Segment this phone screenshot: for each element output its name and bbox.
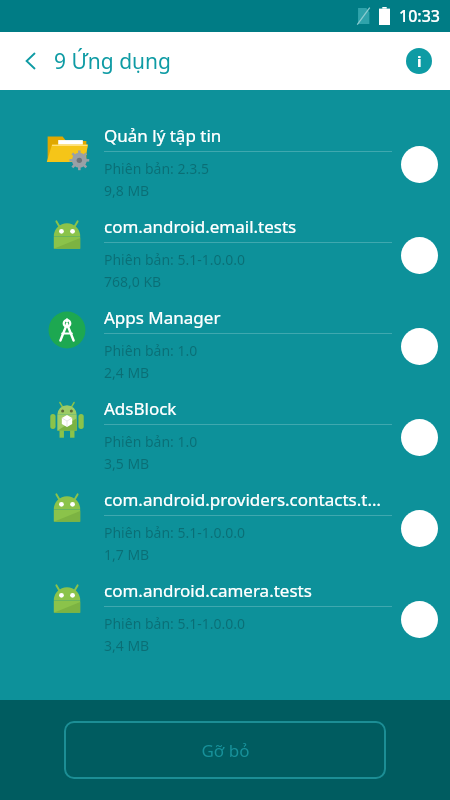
staticText: Phiên bản: 5.1-1.0.0.0 xyxy=(104,523,245,542)
button[interactable]: Quản lý tập tin xyxy=(0,120,450,211)
staticText: AdsBlock xyxy=(104,397,177,420)
button[interactable]: Gỡ bỏ xyxy=(64,721,386,779)
staticText: 9 Ứng dụng xyxy=(54,47,171,76)
staticText: Phiên bản: 5.1-1.0.0.0 xyxy=(104,614,245,633)
staticText: Gỡ bỏ xyxy=(201,739,250,762)
staticText: com.android.providers.contacts.t… xyxy=(104,488,381,511)
button[interactable]: Back xyxy=(14,44,48,78)
staticText: Apps Manager xyxy=(104,306,221,329)
staticText: Phiên bản: 1.0 xyxy=(104,432,198,451)
staticText: 9,8 MB xyxy=(104,181,150,200)
button[interactable]: Select com.android.providers.contacts.t… xyxy=(400,509,438,547)
staticText: 10:33 xyxy=(399,5,440,27)
staticText: 3,5 MB xyxy=(104,454,150,473)
staticText: 768,0 KB xyxy=(104,272,162,291)
button[interactable]: AdsBlock xyxy=(0,393,450,484)
button[interactable]: Select Apps Manager xyxy=(400,327,438,365)
staticText: 1,7 MB xyxy=(104,545,150,564)
staticText: 2,4 MB xyxy=(104,363,150,382)
staticText: i xyxy=(417,51,422,71)
button[interactable]: com.android.email.tests xyxy=(0,211,450,302)
staticText: com.android.camera.tests xyxy=(104,579,312,602)
staticText: Phiên bản: 5.1-1.0.0.0 xyxy=(104,250,245,269)
staticText: Quản lý tập tin xyxy=(104,124,222,147)
button[interactable]: Select AdsBlock xyxy=(400,418,438,456)
button[interactable]: Information xyxy=(402,44,436,78)
button[interactable]: com.android.providers.contacts.t… xyxy=(0,484,450,575)
button[interactable]: Select com.android.email.tests xyxy=(400,236,438,274)
staticText: Phiên bản: 2.3.5 xyxy=(104,159,209,178)
staticText: com.android.email.tests xyxy=(104,215,297,238)
staticText: Phiên bản: 1.0 xyxy=(104,341,198,360)
button[interactable]: Select Quản lý tập tin xyxy=(400,145,438,183)
button[interactable]: Apps Manager xyxy=(0,302,450,393)
button[interactable]: com.android.camera.tests xyxy=(0,575,450,666)
button[interactable]: Select com.android.camera.tests xyxy=(400,600,438,638)
staticText: 3,4 MB xyxy=(104,636,150,655)
